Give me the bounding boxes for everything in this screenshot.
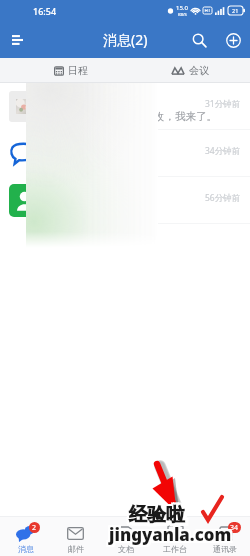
staticText: jingyanla.com — [111, 521, 234, 544]
staticText: 经验啦 — [129, 501, 185, 524]
staticText: jingyanla.com — [109, 521, 232, 544]
staticText: jingyanla.com — [107, 521, 230, 544]
staticText: KB/S — [178, 12, 187, 17]
staticText: jingyanla.com — [109, 523, 232, 546]
button[interactable]: 日程 — [11, 58, 130, 82]
button[interactable]: 2 — [0, 517, 50, 556]
staticText: 15.0 — [176, 4, 188, 12]
staticText: 工作台 — [163, 544, 187, 554]
staticText: jingyanla.com — [107, 525, 230, 548]
staticText: 会议 — [189, 64, 209, 77]
staticText: 文档 — [118, 544, 134, 554]
staticText: 经验啦 — [132, 501, 188, 524]
staticText: jingyanla.com — [109, 525, 232, 548]
button[interactable]: 文档 — [100, 517, 150, 556]
staticText: 消息(2) — [103, 30, 148, 49]
staticText: 消息 — [18, 544, 34, 554]
staticText: 经验啦 — [129, 506, 185, 529]
staticText: 经验啦 — [127, 506, 183, 529]
button[interactable]: 34 — [200, 517, 250, 556]
button[interactable]: 邮件 — [50, 517, 100, 556]
button[interactable]: Add — [216, 23, 250, 57]
staticText: 21 — [232, 7, 239, 14]
staticText: 日程 — [68, 64, 88, 77]
staticText: 34分钟前 — [205, 145, 241, 157]
button[interactable]: 工作台 — [150, 517, 200, 556]
staticText: 2 — [32, 523, 37, 533]
staticText: 56分钟前 — [205, 192, 241, 204]
staticText: 经验啦 — [129, 503, 185, 526]
button[interactable]: 会议 — [130, 58, 250, 82]
staticText: 31分钟前 — [205, 98, 241, 110]
staticText: 经验啦 — [132, 503, 188, 526]
staticText: 经验啦 — [132, 506, 188, 529]
staticText: jingyanla.com — [107, 523, 230, 546]
staticText: 张经理：好的没问题已收，我来了。 — [49, 110, 205, 123]
button[interactable]: 56分钟前 — [0, 177, 250, 224]
button[interactable]: 张经理：好的没问题已收，我来了。 — [0, 83, 250, 130]
staticText: 通讯录 — [213, 544, 237, 554]
staticText: 经验啦 — [127, 503, 183, 526]
staticText: jingyanla.com — [111, 525, 234, 548]
staticText: jingyanla.com — [111, 523, 234, 546]
button[interactable]: Menu — [2, 21, 32, 58]
staticText: 34 — [230, 523, 239, 533]
button[interactable]: 34分钟前 — [0, 130, 250, 177]
staticText: 邮件 — [68, 544, 84, 554]
staticText: 经验啦 — [127, 501, 183, 524]
staticText: 16:54 — [33, 5, 57, 17]
button[interactable]: Search — [182, 23, 216, 57]
